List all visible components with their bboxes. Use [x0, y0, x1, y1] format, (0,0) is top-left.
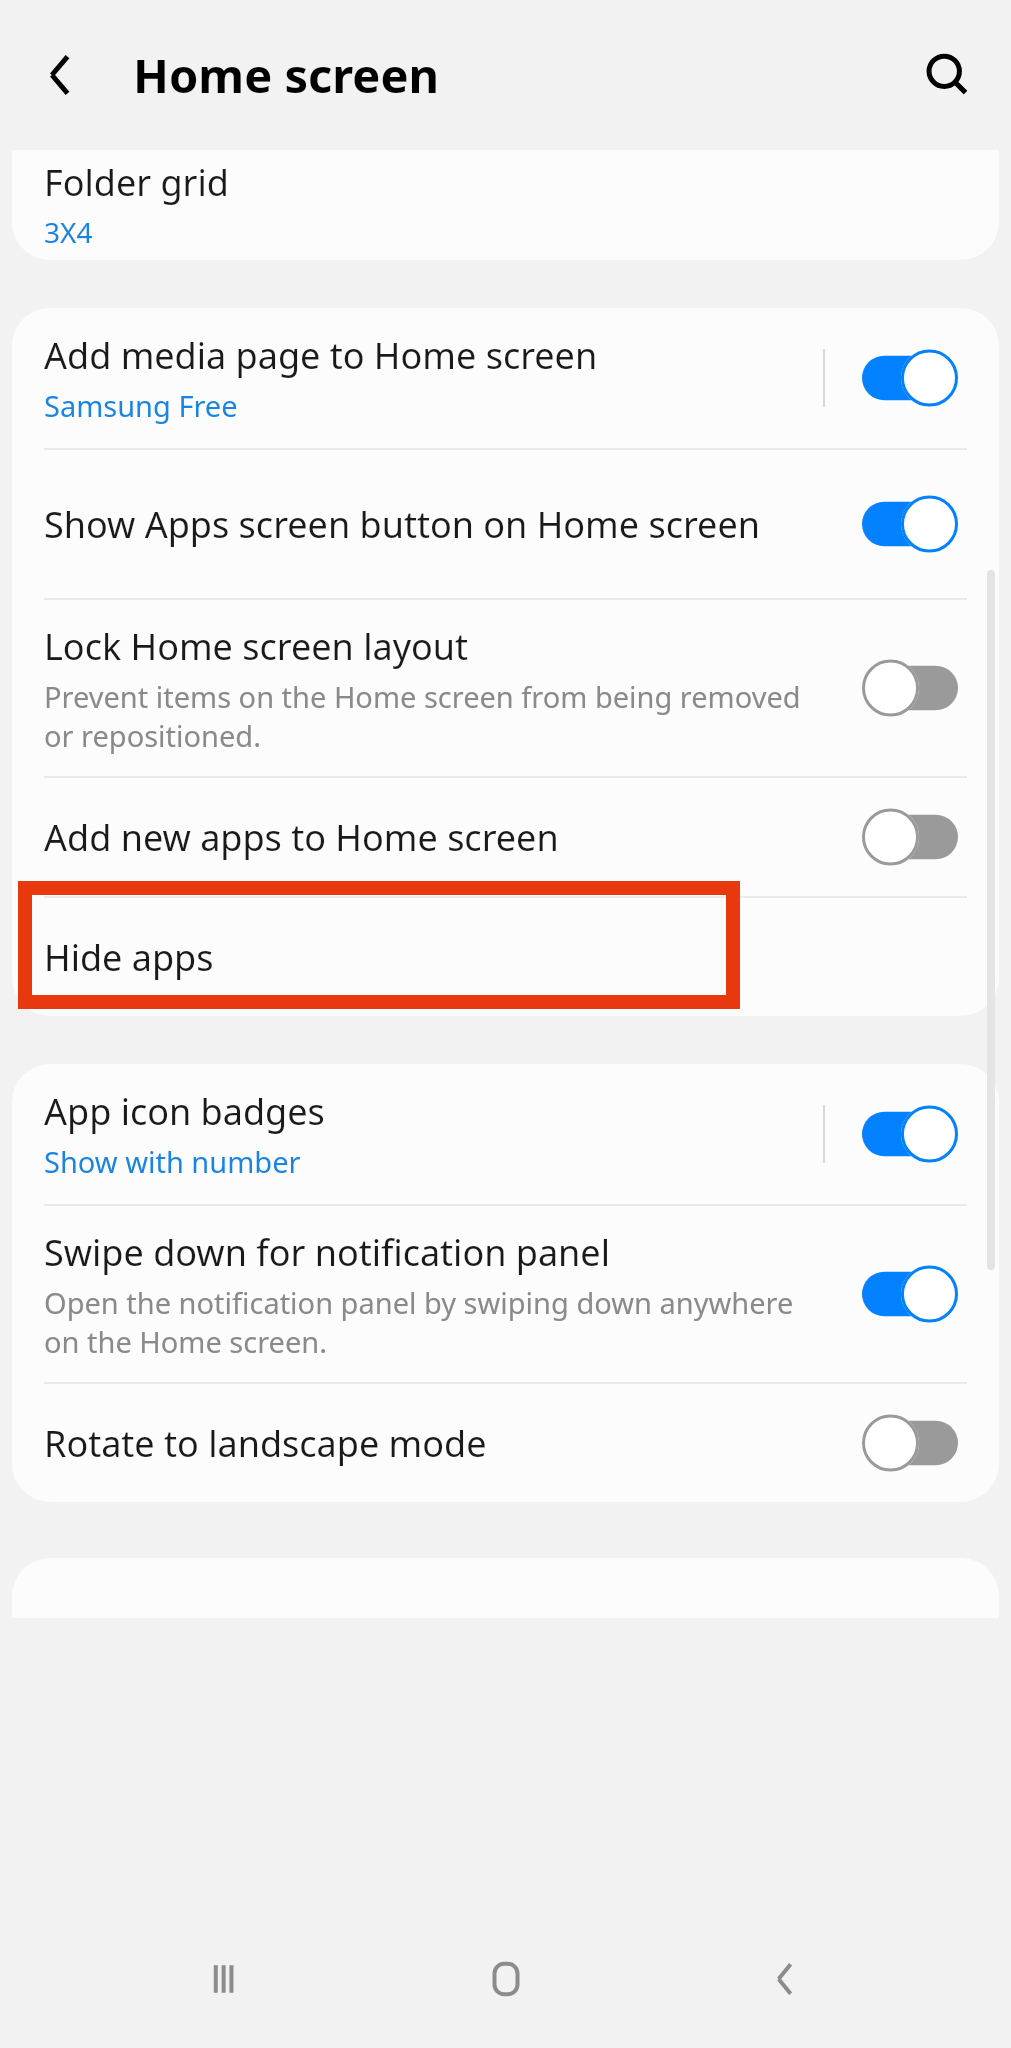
- button[interactable]: Rotate to landscape mode: [12, 1384, 999, 1502]
- button[interactable]: On: [855, 1094, 965, 1174]
- staticText: Show Apps screen button on Home screen: [44, 500, 760, 549]
- staticText: Show with number: [44, 1142, 301, 1181]
- staticText: Home screen: [133, 43, 440, 107]
- button[interactable]: Add new apps to Home screen: [12, 778, 999, 896]
- button[interactable]: Back: [24, 37, 100, 113]
- button[interactable]: On: [855, 484, 965, 564]
- staticText: Prevent items on the Home screen from be…: [44, 677, 803, 755]
- staticText: Swipe down for notification panel: [44, 1228, 610, 1277]
- button[interactable]: Folder grid: [12, 150, 999, 260]
- staticText: 3X4: [44, 213, 93, 251]
- button[interactable]: Search: [907, 35, 987, 115]
- button[interactable]: App icon badges: [12, 1064, 999, 1204]
- button[interactable]: Show Apps screen button on Home screen: [12, 450, 999, 598]
- staticText: Lock Home screen layout: [44, 622, 469, 671]
- button[interactable]: Recents: [170, 1924, 280, 2034]
- button[interactable]: Swipe down for notification panel: [12, 1206, 999, 1382]
- staticText: Rotate to landscape mode: [44, 1419, 487, 1468]
- button[interactable]: Back: [731, 1924, 841, 2034]
- staticText: Folder grid: [44, 158, 229, 207]
- staticText: App icon badges: [44, 1087, 325, 1136]
- button[interactable]: Off: [855, 648, 965, 728]
- button[interactable]: Off: [855, 797, 965, 877]
- button[interactable]: Off: [855, 1403, 965, 1483]
- button[interactable]: Lock Home screen layout: [12, 600, 999, 776]
- button[interactable]: On: [855, 1254, 965, 1334]
- staticText: Samsung Free: [44, 386, 238, 425]
- staticText: Hide apps: [44, 933, 214, 982]
- staticText: Add new apps to Home screen: [44, 813, 559, 862]
- button[interactable]: Hide apps: [12, 898, 999, 1016]
- button[interactable]: On: [855, 338, 965, 418]
- staticText: Add media page to Home screen: [44, 331, 598, 380]
- button[interactable]: Home: [451, 1924, 561, 2034]
- staticText: Open the notification panel by swiping d…: [44, 1283, 803, 1361]
- button[interactable]: Add media page to Home screen: [12, 308, 999, 448]
